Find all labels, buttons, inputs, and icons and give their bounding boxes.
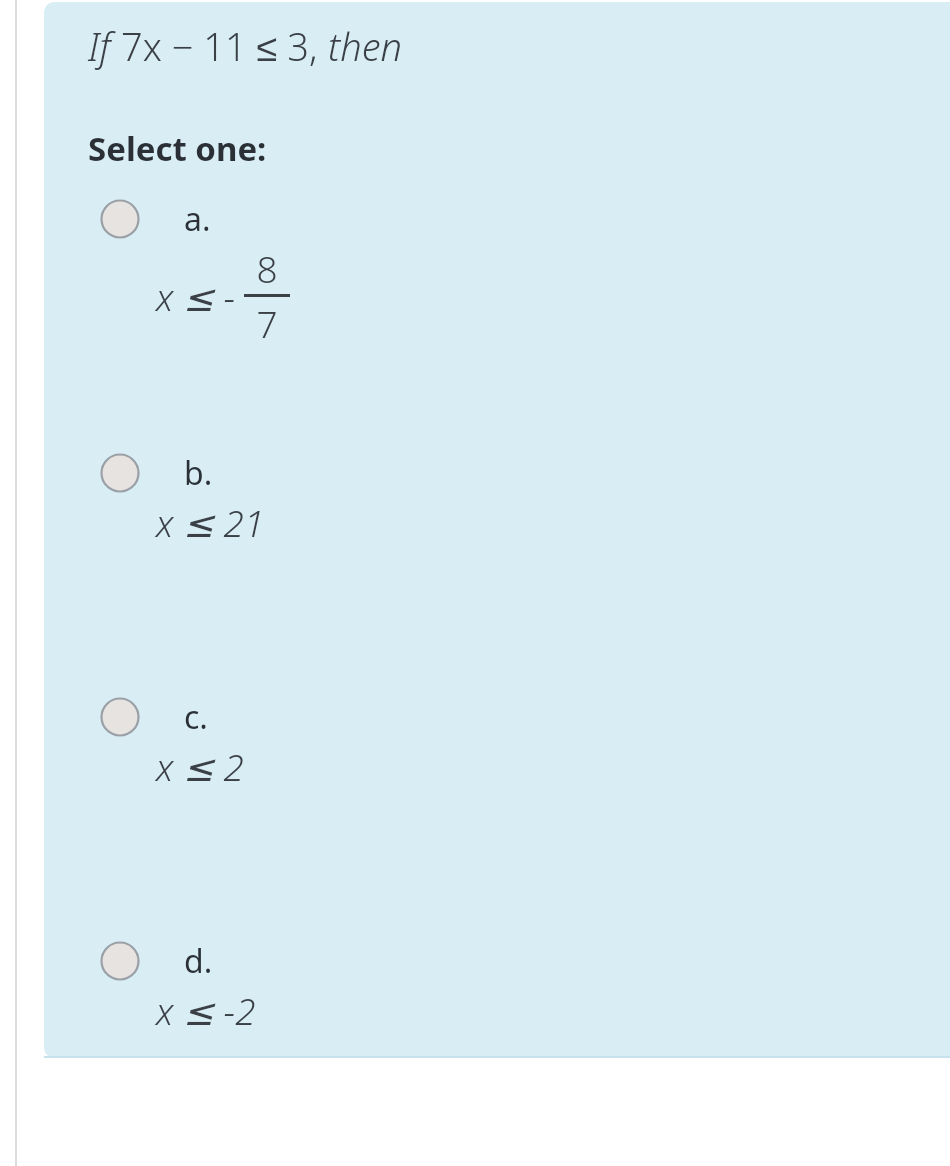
staticText: x ≤ − [156,271,236,321]
button[interactable]: c. [44,697,950,831]
staticText: x ≤ 21 [156,497,265,547]
staticText: Select one: [88,126,267,171]
staticText: x ≤ 2 [156,741,244,791]
staticText: b. [184,451,213,495]
staticText: x ≤ −2 [156,985,256,1035]
staticText: then [328,20,402,72]
staticText: d. [184,939,213,983]
staticText: 8 [256,243,278,293]
staticText: a. [184,197,211,241]
staticText: 7 [256,298,278,348]
staticText: c. [184,695,208,739]
button[interactable]: b. [44,453,950,587]
staticText: If [88,20,111,72]
button[interactable]: d. [44,941,950,1058]
button[interactable]: a. [44,199,950,423]
staticText: 7x − 11 ≤ 3, [121,20,318,72]
